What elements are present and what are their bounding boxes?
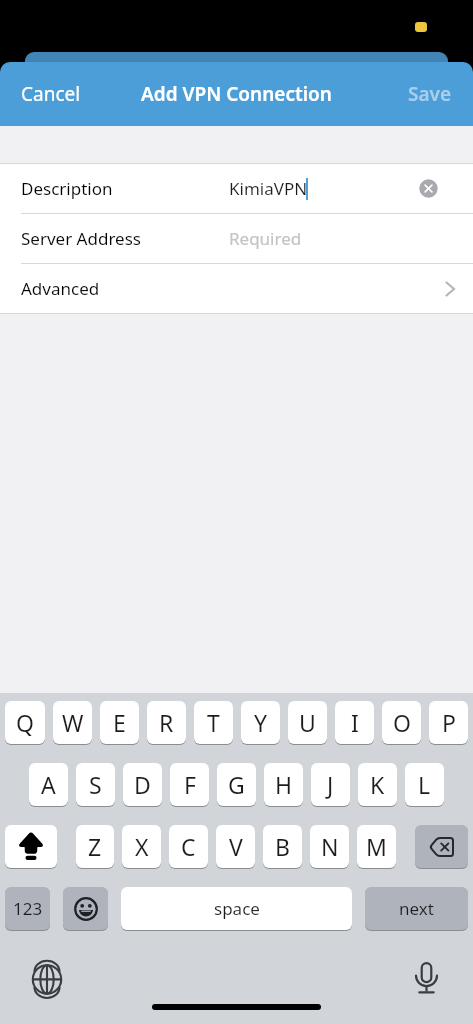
staticText: V (229, 831, 243, 862)
staticText: I (351, 707, 359, 738)
button[interactable]: U (288, 701, 327, 744)
staticText: W (62, 707, 84, 738)
staticText: N (321, 831, 339, 862)
button[interactable]: N (310, 825, 349, 868)
staticText: O (393, 707, 411, 738)
button[interactable]: Cancel (0, 71, 91, 117)
staticText: 123 (13, 897, 43, 920)
staticText: G (228, 769, 245, 800)
staticText: B (275, 831, 290, 862)
button[interactable]: space (121, 887, 352, 930)
button[interactable]: D (123, 763, 162, 806)
staticText: next (399, 897, 434, 920)
staticText: Y (254, 707, 268, 738)
button[interactable]: G (217, 763, 256, 806)
staticText: space (214, 897, 260, 920)
staticText: S (89, 769, 102, 800)
button[interactable] (415, 825, 468, 868)
staticText: M (366, 831, 387, 862)
button[interactable]: C (169, 825, 208, 868)
button[interactable]: H (264, 763, 303, 806)
button[interactable] (63, 887, 108, 930)
staticText: X (135, 831, 149, 862)
staticText: Description (21, 177, 113, 200)
staticText: L (418, 769, 431, 800)
button[interactable]: Y (241, 701, 280, 744)
button[interactable]: R (147, 701, 186, 744)
button[interactable] (5, 825, 57, 868)
staticText: K (370, 769, 385, 800)
button[interactable]: B (263, 825, 302, 868)
button[interactable]: T (194, 701, 233, 744)
button[interactable]: M (357, 825, 396, 868)
button[interactable]: F (170, 763, 209, 806)
staticText: C (181, 831, 196, 862)
staticText: E (113, 707, 126, 738)
staticText: Advanced (21, 277, 100, 300)
button[interactable]: J (311, 763, 350, 806)
staticText: Cancel (21, 81, 81, 107)
staticText: Save (408, 81, 452, 107)
button[interactable]: L (405, 763, 444, 806)
button[interactable]: Z (76, 825, 114, 868)
staticText: Add VPN Connection (141, 81, 332, 107)
button[interactable]: K (358, 763, 397, 806)
staticText: R (159, 707, 174, 738)
button[interactable]: P (429, 701, 468, 744)
staticText: P (442, 707, 456, 738)
button[interactable] (415, 962, 438, 995)
button[interactable]: X (122, 825, 161, 868)
staticText: D (134, 769, 151, 800)
button[interactable]: Q (5, 701, 45, 744)
staticText: U (299, 707, 316, 738)
button[interactable]: W (53, 701, 92, 744)
button[interactable] (32, 964, 62, 994)
button[interactable]: 123 (5, 887, 50, 930)
staticText: Server Address (21, 227, 141, 250)
staticText: A (41, 769, 56, 800)
staticText: H (275, 769, 293, 800)
staticText: KimiaVPN (229, 177, 308, 200)
button[interactable]: Description (0, 164, 473, 213)
staticText: J (327, 769, 334, 800)
button[interactable]: A (29, 763, 68, 806)
staticText: Z (88, 831, 102, 862)
button[interactable]: Save (398, 71, 473, 117)
button[interactable]: V (216, 825, 255, 868)
button[interactable]: Server Address (0, 214, 473, 263)
staticText: Q (16, 707, 34, 738)
staticText: F (184, 769, 196, 800)
button[interactable]: I (335, 701, 374, 744)
button[interactable]: O (382, 701, 421, 744)
button[interactable]: Advanced (0, 264, 473, 313)
button[interactable]: S (76, 763, 115, 806)
button[interactable]: next (365, 887, 468, 930)
staticText: T (207, 707, 220, 738)
staticText: Required (229, 227, 302, 250)
button[interactable]: E (100, 701, 139, 744)
